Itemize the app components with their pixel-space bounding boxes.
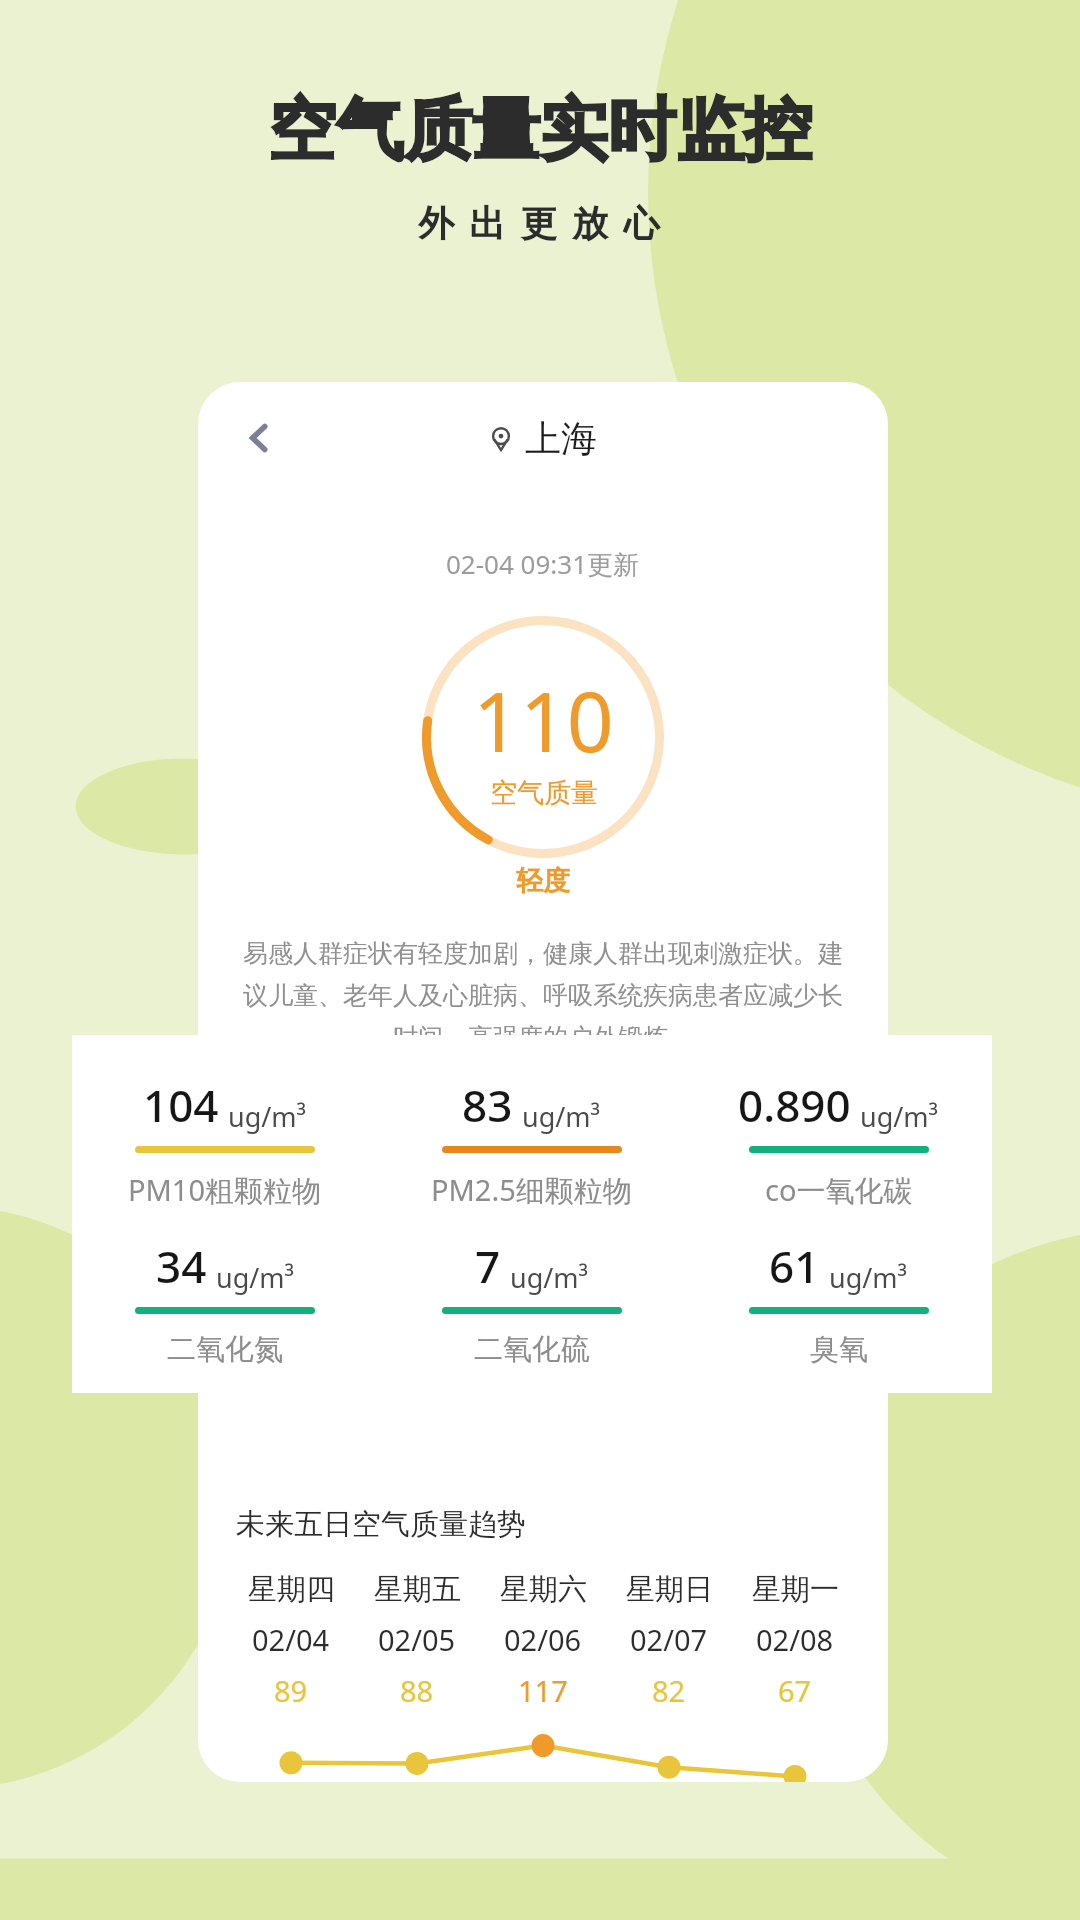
staticText: co一氧化碳: [765, 1170, 913, 1210]
staticText: 02/07: [630, 1620, 708, 1659]
staticText: 星期四: [248, 1571, 335, 1608]
staticText: ug/m³: [860, 1098, 939, 1135]
button[interactable]: 空气质量全国排行榜: [222, 1090, 864, 1198]
staticText: 星期五: [374, 1571, 461, 1608]
staticText: ug/m³: [829, 1259, 908, 1296]
staticText: 空气质量: [490, 776, 598, 810]
button[interactable]: 0.890: [685, 1075, 992, 1210]
button[interactable]: 83: [378, 1075, 685, 1210]
staticText: 02/05: [378, 1620, 456, 1659]
staticText: 61: [769, 1236, 820, 1296]
staticText: PM2.5细颗粒物: [431, 1170, 632, 1210]
staticText: ug/m³: [522, 1098, 601, 1135]
staticText: ug/m³: [228, 1098, 307, 1135]
staticText: 104: [143, 1075, 219, 1135]
button[interactable]: 104: [72, 1075, 378, 1210]
staticText: 二氧化氮: [167, 1331, 283, 1368]
staticText: 02/06: [504, 1620, 582, 1659]
staticText: 34: [156, 1236, 207, 1296]
button[interactable]: 34: [72, 1236, 378, 1368]
button[interactable]: 61: [685, 1236, 992, 1368]
staticText: 空气质量全国排行榜: [244, 1157, 514, 1195]
staticText: 上海: [525, 416, 597, 461]
staticText: 02-04 09:31更新: [446, 546, 640, 582]
staticText: 67: [778, 1671, 812, 1710]
staticText: 117: [518, 1671, 568, 1710]
button[interactable]: 7: [378, 1236, 685, 1368]
staticText: 空气质量实时监控: [268, 88, 812, 174]
staticText: ug/m³: [216, 1259, 295, 1296]
staticText: 7: [475, 1236, 501, 1296]
staticText: 89: [274, 1671, 308, 1710]
staticText: 未来五日空气质量趋势: [236, 1506, 526, 1543]
staticText: 星期一: [752, 1571, 839, 1608]
staticText: 88: [400, 1671, 434, 1710]
staticText: 02/08: [756, 1620, 834, 1659]
staticText: 星期六: [500, 1571, 587, 1608]
button[interactable]: Back: [228, 407, 290, 469]
staticText: 臭氧: [810, 1331, 868, 1368]
staticText: 02/04: [252, 1620, 330, 1659]
staticText: PM10粗颗粒物: [128, 1170, 322, 1210]
staticText: 二氧化硫: [474, 1331, 590, 1368]
staticText: 110: [473, 664, 614, 776]
staticText: 0.890: [738, 1075, 851, 1135]
staticText: 星期日: [626, 1571, 713, 1608]
staticText: 轻度: [516, 864, 570, 898]
staticText: 82: [652, 1671, 686, 1710]
staticText: 1114/2410: [693, 1157, 842, 1198]
staticText: 83: [462, 1075, 513, 1135]
staticText: 易感人群症状有轻度加剧，健康人群出现刺激症状。建议儿童、老年人及心脏病、呼吸系统…: [238, 938, 848, 1054]
staticText: 外 出 更 放 心: [418, 198, 663, 247]
staticText: ug/m³: [510, 1259, 589, 1296]
